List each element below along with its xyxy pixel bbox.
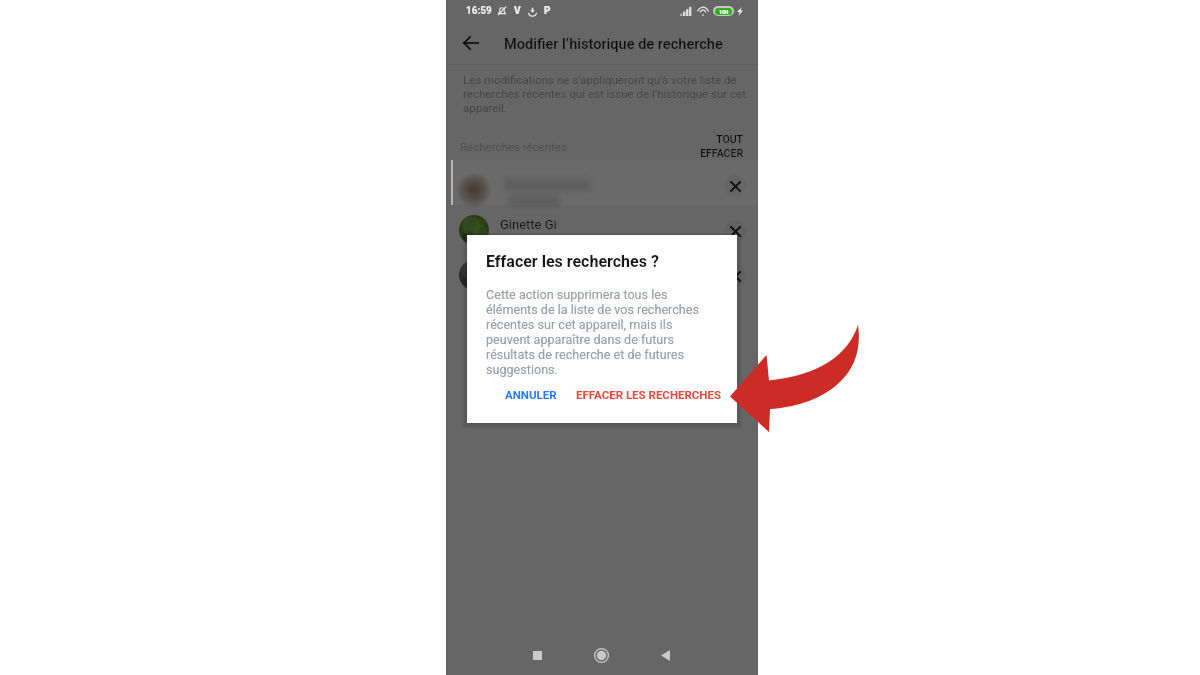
staticText: V: [514, 5, 521, 17]
button[interactable]: Récents: [520, 638, 554, 672]
staticText: Ginette Gi: [500, 217, 557, 232]
button[interactable]: Accueil: [584, 638, 618, 672]
button[interactable]: Supprimer: [446, 253, 758, 298]
button[interactable]: Supprimer: [724, 175, 746, 197]
staticText: ANNULER: [505, 388, 557, 401]
button[interactable]: ANNULER: [503, 388, 559, 401]
staticText: 16:59: [466, 5, 492, 17]
staticText: Effacer les recherches ?: [486, 252, 659, 271]
button[interactable]: Recherches récentes: [460, 140, 567, 153]
staticText: P: [544, 5, 551, 17]
staticText: TOUT EFFACER: [643, 133, 743, 159]
button[interactable]: Ginette Gi: [446, 208, 758, 253]
button[interactable]: Retour: [449, 22, 491, 64]
staticText: Cette action supprimera tous les élément…: [486, 287, 708, 377]
button[interactable]: EFFACER LES RECHERCHES: [574, 388, 724, 401]
staticText: Les modifications ne s’appliqueront qu’à…: [463, 73, 746, 115]
button[interactable]: Retour: [648, 638, 682, 672]
staticText: Modifier l’historique de recherche: [504, 35, 723, 52]
staticText: EFFACER LES RECHERCHES: [576, 388, 722, 401]
button[interactable]: Supprimer: [446, 160, 758, 205]
staticText: 100: [719, 9, 729, 15]
button[interactable]: Supprimer: [724, 220, 746, 242]
button[interactable]: Supprimer: [724, 265, 746, 287]
button[interactable]: TOUT EFFACER: [643, 133, 743, 159]
